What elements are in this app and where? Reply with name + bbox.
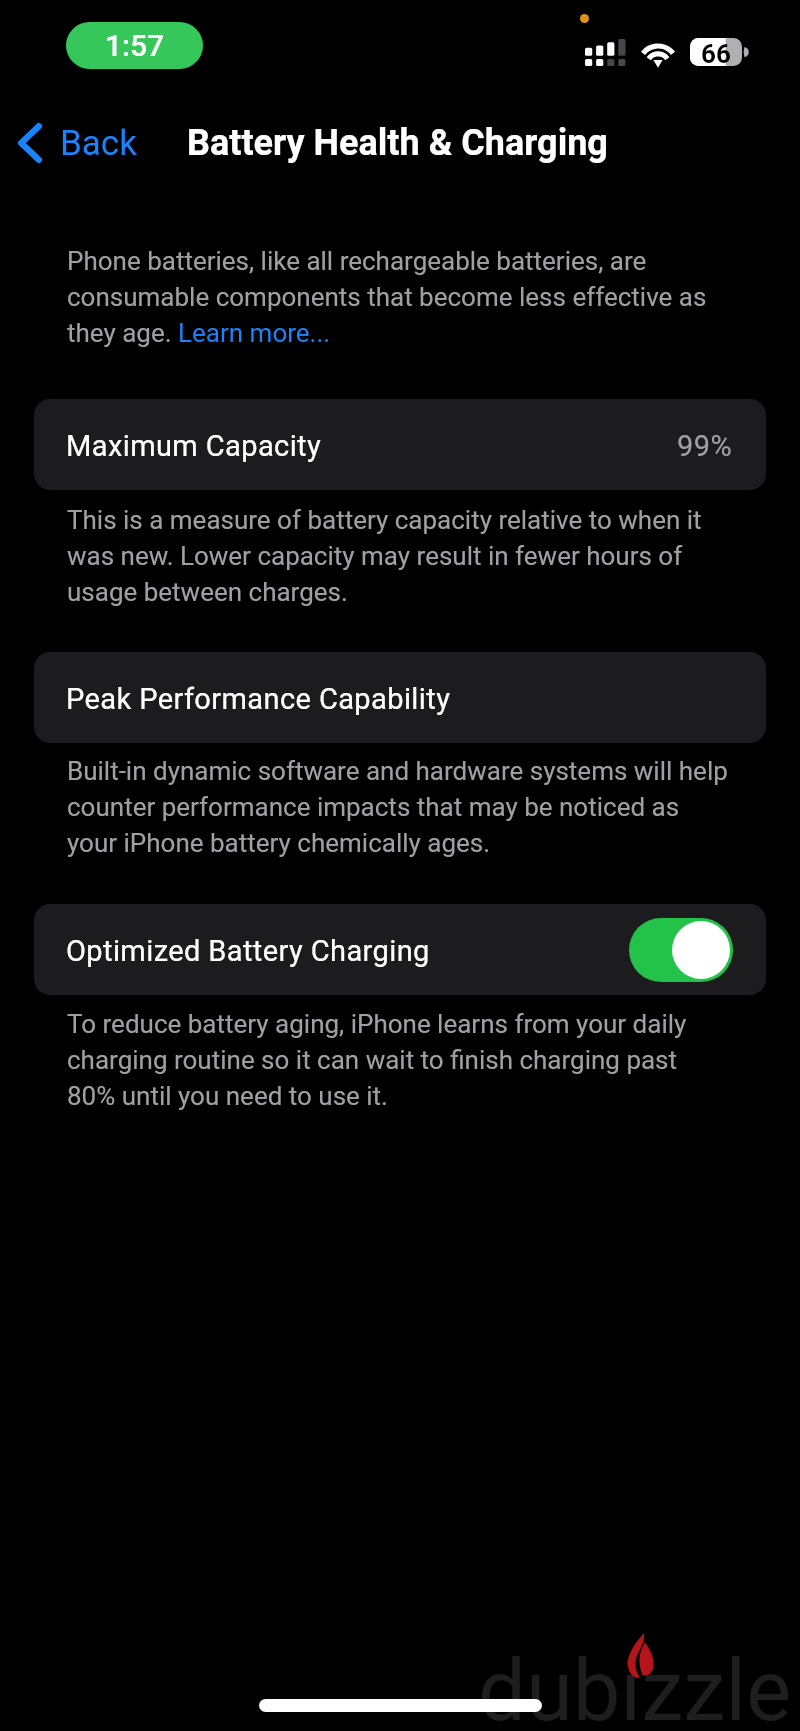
button[interactable]: Peak Performance Capability <box>34 652 766 743</box>
staticText: Peak Performance Capability <box>66 679 451 717</box>
button[interactable]: Optimized Battery Charging <box>34 904 766 995</box>
staticText: Battery Health & Charging <box>187 122 608 164</box>
staticText: Optimized Battery Charging <box>66 931 430 969</box>
staticText: Phone batteries, like all rechargeable b… <box>67 241 729 349</box>
staticText: Maximum Capacity <box>66 426 322 464</box>
staticText: Built-in dynamic software and hardware s… <box>67 751 729 859</box>
staticText: 66 <box>698 39 734 69</box>
staticText: 99% <box>677 426 733 464</box>
other: Cellular signal <box>585 38 626 67</box>
staticText: Back <box>60 123 137 164</box>
staticText: dubizzle <box>478 1641 792 1731</box>
button[interactable]: Learn more <box>178 317 333 349</box>
button[interactable]: Back <box>8 110 149 176</box>
staticText: 1:57 <box>105 28 165 63</box>
staticText: To reduce battery aging, iPhone learns f… <box>67 1004 729 1112</box>
button[interactable]: Maximum Capacity <box>34 399 766 490</box>
staticText: This is a measure of battery capacity re… <box>67 500 729 608</box>
button[interactable]: Optimized Battery Charging toggle <box>629 918 733 982</box>
other: Battery 66 percent <box>690 38 748 68</box>
other: Wi-Fi <box>640 38 676 65</box>
